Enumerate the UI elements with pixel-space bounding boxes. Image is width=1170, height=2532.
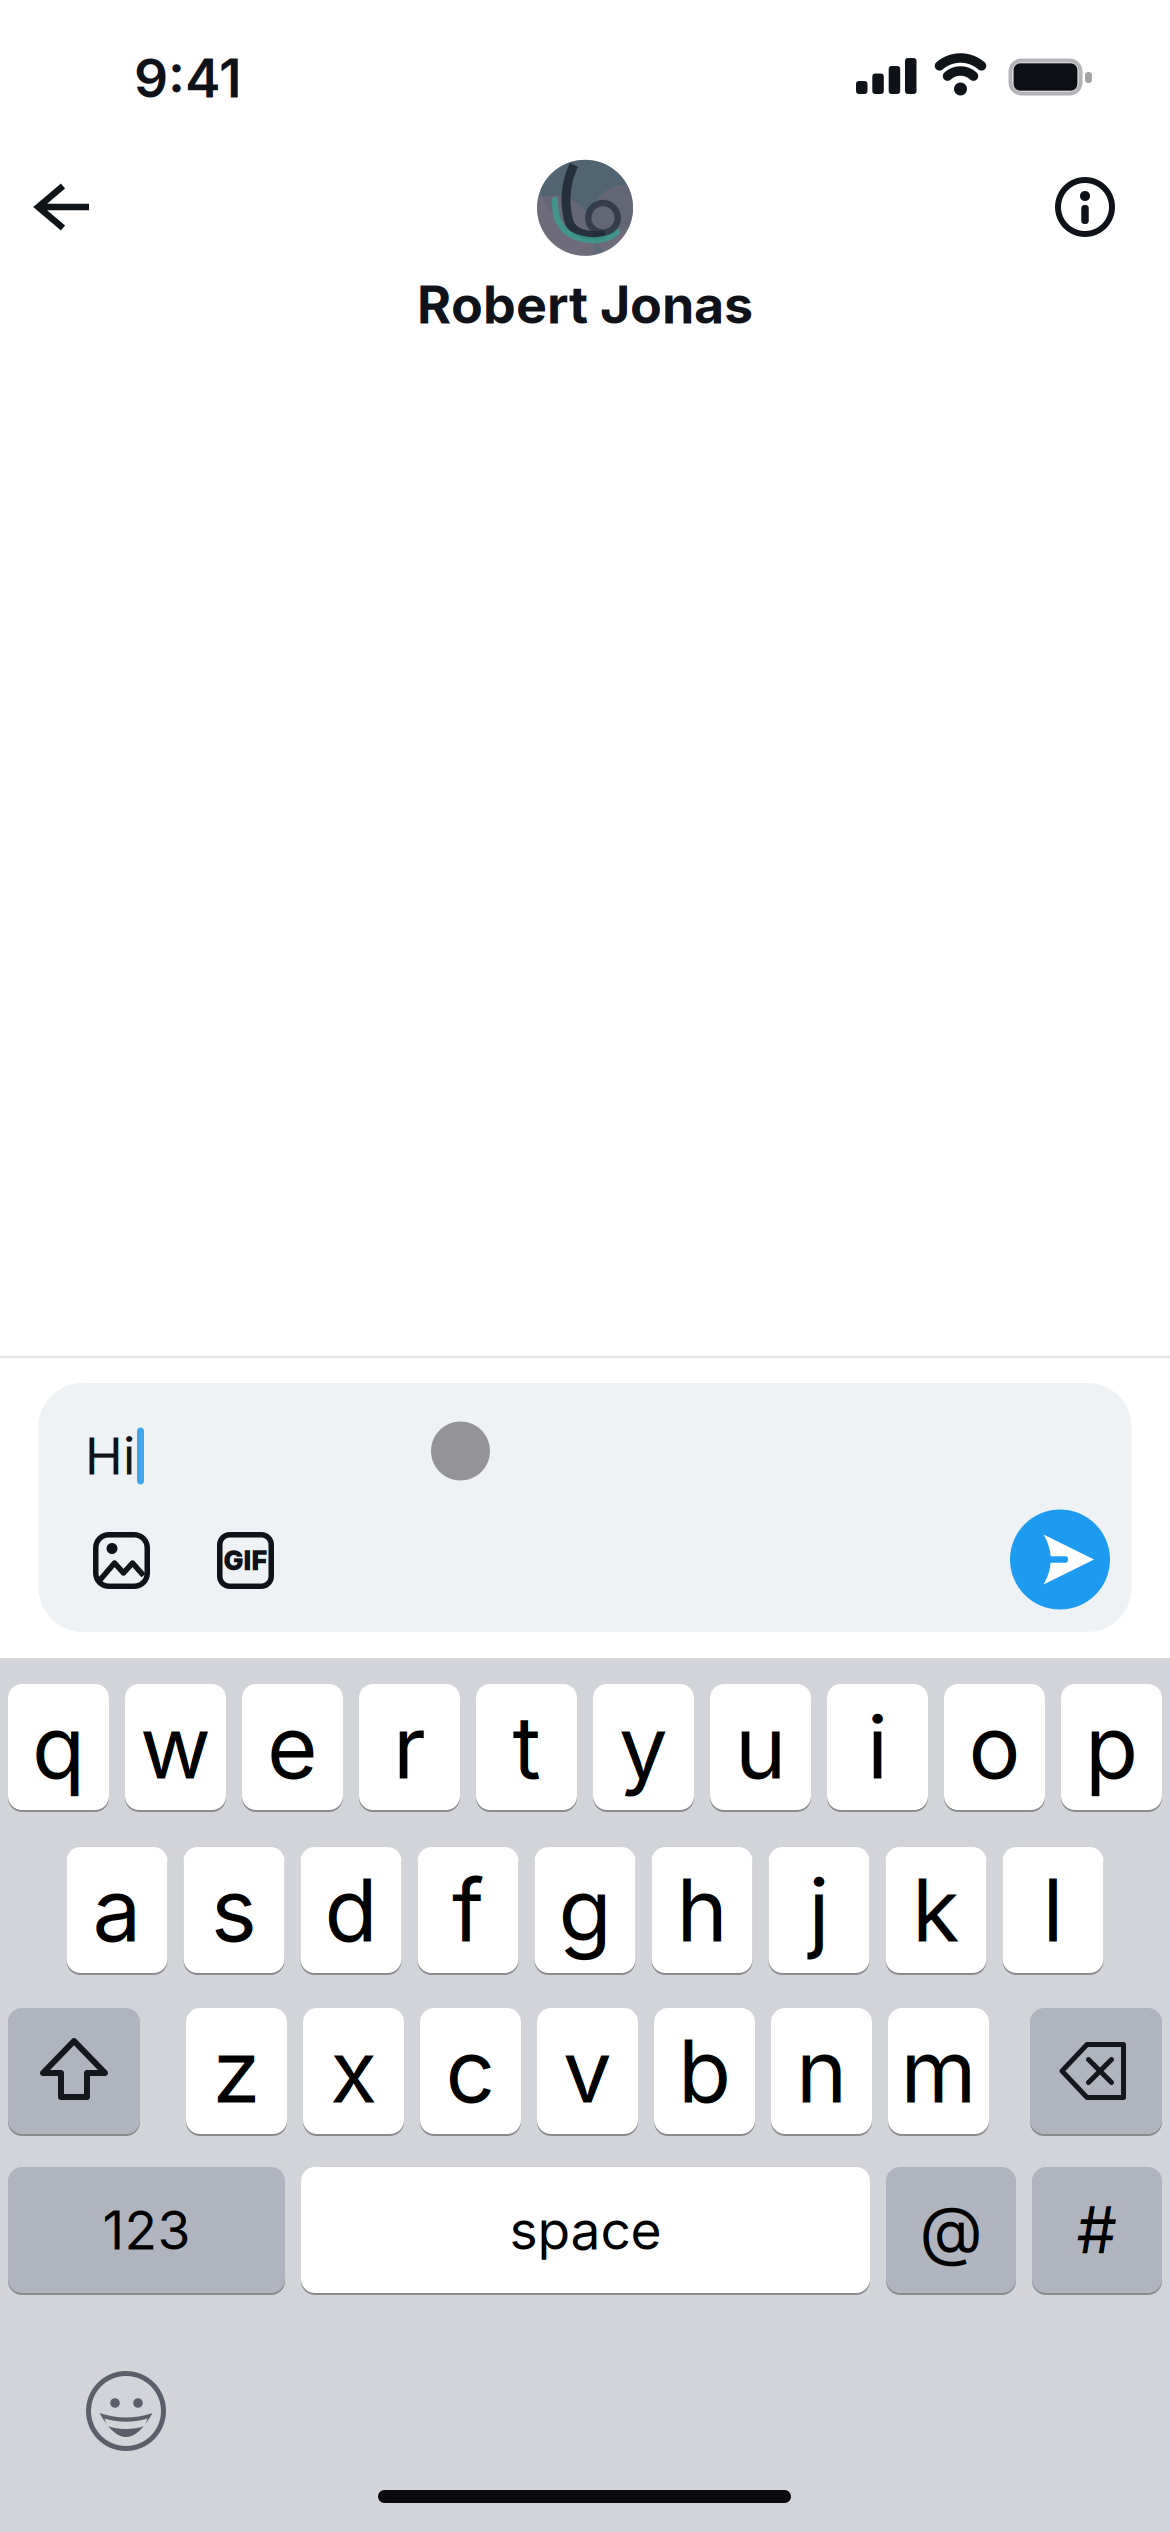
button[interactable]: f (417, 1846, 518, 1974)
button[interactable]: h (651, 1846, 752, 1974)
staticText: l (1042, 1859, 1063, 1961)
button[interactable]: y (593, 1683, 694, 1811)
button[interactable]: q (8, 1683, 109, 1811)
staticText: f (452, 1859, 484, 1961)
button[interactable]: r (359, 1683, 460, 1811)
staticText: j (808, 1859, 829, 1961)
staticText: i (867, 1696, 888, 1798)
staticText: g (558, 1859, 611, 1961)
staticText: @ (919, 2191, 982, 2269)
staticText: o (968, 1696, 1020, 1798)
button[interactable]: Add GIF (217, 1532, 274, 1589)
staticText: u (735, 1696, 786, 1798)
button[interactable]: Conversation info (1055, 177, 1115, 237)
staticText: a (92, 1859, 141, 1961)
button[interactable]: Emoji (84, 2369, 168, 2453)
button[interactable]: @ (886, 2166, 1016, 2294)
staticText: 9:41 (134, 46, 242, 109)
button[interactable]: m (888, 2007, 989, 2135)
button[interactable]: v (537, 2007, 638, 2135)
staticText: x (330, 2020, 377, 2122)
staticText: k (912, 1859, 960, 1961)
staticText: d (324, 1859, 377, 1961)
button[interactable]: n (771, 2007, 872, 2135)
button[interactable]: o (944, 1683, 1045, 1811)
staticText: w (140, 1696, 211, 1798)
button[interactable]: p (1061, 1683, 1162, 1811)
button[interactable]: e (242, 1683, 343, 1811)
button[interactable]: j (768, 1846, 869, 1974)
staticText: t (512, 1696, 540, 1798)
staticText: GIF (223, 1545, 267, 1576)
staticText: z (212, 2020, 260, 2122)
staticText: Robert Jonas (417, 274, 753, 335)
button[interactable]: Delete (1030, 2007, 1162, 2135)
button[interactable]: Start a message (38, 1383, 1131, 1632)
button[interactable]: 123 (8, 2166, 285, 2294)
button[interactable]: Add photo (93, 1532, 150, 1589)
button[interactable]: c (420, 2007, 521, 2135)
button[interactable]: k (885, 1846, 986, 1974)
button[interactable]: Back (31, 179, 95, 235)
button[interactable]: Shift (8, 2007, 140, 2135)
button[interactable]: z (186, 2007, 287, 2135)
staticText: # (1076, 2192, 1117, 2268)
button[interactable]: g (534, 1846, 635, 1974)
button[interactable]: x (303, 2007, 404, 2135)
button[interactable]: s (183, 1846, 284, 1974)
button[interactable]: l (1002, 1846, 1103, 1974)
button[interactable]: d (300, 1846, 401, 1974)
staticText: n (796, 2020, 847, 2122)
staticText: Hi (85, 1426, 135, 1486)
staticText: h (676, 1859, 727, 1961)
button[interactable]: # (1032, 2166, 1162, 2294)
staticText: c (445, 2020, 495, 2122)
button[interactable]: b (654, 2007, 755, 2135)
staticText: 123 (102, 2198, 190, 2261)
button[interactable]: space (301, 2166, 870, 2294)
button[interactable]: i (827, 1683, 928, 1811)
button[interactable]: Send (1010, 1509, 1110, 1609)
staticText: m (900, 2020, 976, 2122)
button[interactable]: u (710, 1683, 811, 1811)
staticText: space (509, 2198, 661, 2261)
staticText: y (619, 1696, 668, 1798)
button[interactable]: w (125, 1683, 226, 1811)
button[interactable]: Robert Jonas profile (417, 160, 753, 335)
staticText: p (1085, 1696, 1138, 1798)
staticText: e (267, 1696, 318, 1798)
button[interactable]: a (66, 1846, 167, 1974)
staticText: v (563, 2020, 612, 2122)
staticText: b (678, 2020, 731, 2122)
button[interactable]: t (476, 1683, 577, 1811)
staticText: s (211, 1859, 257, 1961)
staticText: q (32, 1696, 85, 1798)
staticText: r (393, 1696, 426, 1798)
